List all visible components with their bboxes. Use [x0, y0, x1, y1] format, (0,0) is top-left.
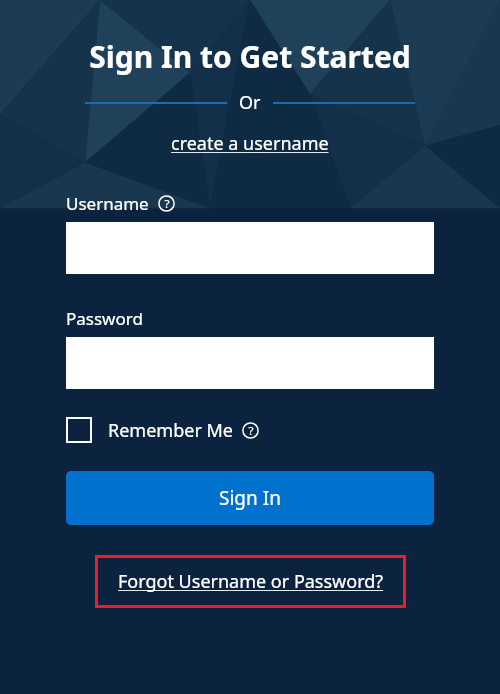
staticText: Remember Me — [108, 418, 233, 443]
staticText: Username — [66, 192, 149, 215]
button[interactable]: Sign In — [66, 471, 434, 525]
button[interactable]: Help — [242, 422, 259, 439]
staticText: Forgot Username or Password? — [118, 569, 384, 594]
staticText: Password — [66, 307, 143, 330]
button[interactable]: create a username — [165, 129, 335, 158]
button[interactable]: Forgot Username or Password? — [95, 555, 406, 608]
staticText: ? — [164, 196, 170, 212]
staticText: Sign In — [219, 485, 281, 511]
button[interactable]: Remember Me — [66, 417, 259, 443]
button[interactable]: Help — [158, 195, 175, 212]
staticText: Or — [239, 90, 261, 115]
staticText: ? — [248, 423, 254, 439]
staticText: Sign In to Get Started — [0, 36, 500, 77]
